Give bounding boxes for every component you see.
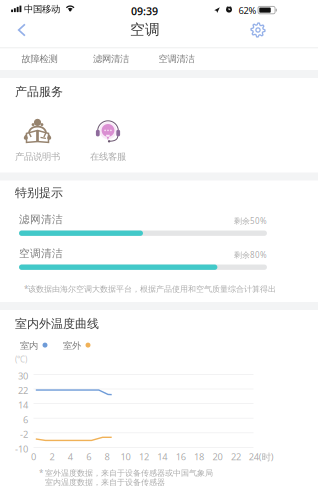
button[interactable]: 滤网清洁 (79, 51, 143, 67)
staticText: 滤网清洁 (93, 53, 129, 65)
staticText: 16 (176, 450, 186, 463)
button[interactable]: 在线客服 (78, 120, 138, 162)
button[interactable]: 空调清洁 (144, 51, 208, 67)
staticText: 室内温度数据，来自于设备传感器 (45, 477, 165, 487)
staticText: * 室外温度数据，来自于设备传感器或中国气象局 (39, 467, 213, 478)
staticText: 室内 (20, 340, 38, 351)
staticText: 室外 (63, 340, 81, 351)
staticText: 空调清洁 (158, 53, 194, 65)
staticText: 剩余50% (234, 215, 267, 226)
button[interactable]: 产品说明书 (7, 118, 67, 162)
staticText: 6 (23, 413, 28, 426)
staticText: -2 (20, 428, 28, 440)
button[interactable]: 返回 (6, 16, 38, 44)
staticText: 22 (231, 450, 241, 463)
staticText: 62% (238, 4, 256, 17)
staticText: 0 (31, 450, 36, 463)
staticText: 空调 (130, 20, 160, 38)
staticText: 2 (49, 450, 54, 463)
staticText: 特别提示 (15, 185, 63, 200)
staticText: (°C) (15, 354, 27, 365)
staticText: 中国移动 (24, 3, 60, 15)
staticText: *该数据由海尔空调大数据平台，根据产品使用和空气质量综合计算得出 (24, 283, 276, 294)
button[interactable]: 设置 (240, 16, 276, 44)
staticText: 30 (18, 370, 28, 382)
staticText: 产品说明书 (15, 151, 60, 162)
button[interactable]: 故障检测 (7, 51, 71, 67)
staticText: 09:39 (131, 4, 158, 18)
staticText: 8 (105, 450, 110, 463)
staticText: -10 (15, 443, 28, 455)
staticText: 在线客服 (90, 151, 126, 162)
staticText: 空调清洁 (19, 247, 63, 260)
staticText: 14 (157, 450, 167, 463)
staticText: 24(时) (249, 450, 274, 463)
staticText: 12 (139, 450, 149, 463)
staticText: 4 (68, 450, 73, 463)
staticText: 滤网清洁 (19, 213, 63, 226)
staticText: 14 (18, 399, 28, 411)
staticText: 室内外温度曲线 (15, 316, 99, 331)
staticText: 18 (194, 450, 204, 463)
staticText: 产品服务 (15, 84, 63, 99)
staticText: 22 (18, 384, 28, 397)
staticText: 剩余80% (234, 249, 267, 260)
staticText: 10 (120, 450, 130, 463)
staticText: 故障检测 (21, 53, 57, 65)
staticText: 6 (86, 450, 91, 463)
staticText: 20 (212, 450, 222, 463)
